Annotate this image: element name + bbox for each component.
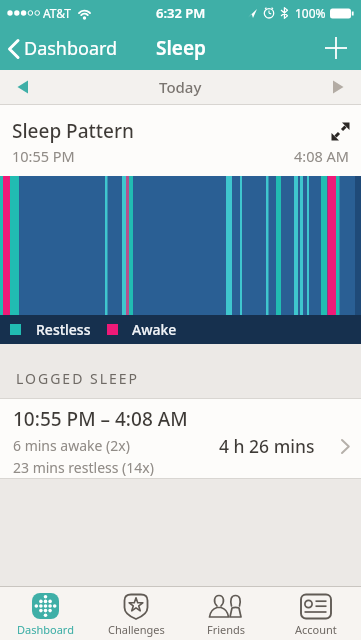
staticText: Dashboard [24, 36, 118, 61]
staticText: Awake [132, 320, 177, 339]
button[interactable]: Account [271, 587, 361, 640]
staticText: 6:32 PM [156, 4, 206, 22]
staticText: Dashboard [17, 622, 74, 637]
staticText: 4 h 26 mins [219, 434, 315, 458]
staticText: Challenges [108, 622, 165, 637]
staticText: 10:55 PM [12, 146, 75, 166]
button[interactable]: Challenges [91, 587, 181, 640]
staticText: Account [295, 622, 337, 637]
staticText: AT&T [43, 5, 71, 21]
button[interactable] [325, 74, 351, 100]
staticText: 6 mins awake (2x) [13, 436, 130, 455]
staticText: 23 mins restless (14x) [13, 458, 154, 477]
button[interactable]: Dashboard [0, 587, 91, 640]
button[interactable]: Friends [181, 587, 271, 640]
staticText: Today [159, 77, 202, 97]
staticText: Restless [36, 320, 91, 339]
button[interactable] [10, 74, 36, 100]
staticText: 100% [295, 5, 326, 21]
staticText: Friends [207, 622, 246, 637]
button[interactable]: 10:55 PM – 4:08 AM [0, 399, 361, 478]
staticText: LOGGED SLEEP [16, 369, 140, 388]
staticText: 4:08 AM [294, 146, 349, 166]
button[interactable]: Dashboard [8, 36, 118, 61]
button[interactable] [321, 33, 351, 63]
button[interactable] [328, 119, 352, 143]
staticText: Sleep Pattern [12, 118, 134, 144]
staticText: 10:55 PM – 4:08 AM [13, 406, 188, 432]
staticText: Sleep [156, 35, 206, 61]
